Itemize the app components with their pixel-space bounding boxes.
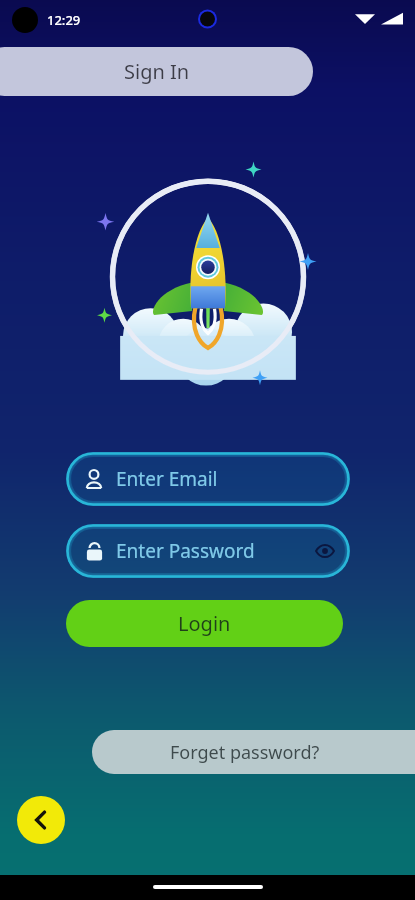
- button[interactable]: Forget password?: [92, 730, 415, 774]
- staticText: Forget password?: [170, 740, 320, 765]
- staticText: Login: [178, 610, 231, 637]
- button[interactable]: Back: [17, 796, 65, 844]
- button[interactable]: Enter Password: [66, 524, 350, 578]
- staticText: 12:29: [47, 11, 81, 29]
- button[interactable]: Enter Email: [66, 452, 350, 506]
- staticText: Sign In: [124, 58, 190, 85]
- staticText: Enter Email: [116, 466, 218, 492]
- staticText: Enter Password: [116, 538, 255, 564]
- button[interactable]: Show password: [312, 538, 338, 564]
- button[interactable]: Login: [66, 600, 343, 647]
- button[interactable]: Sign In: [0, 47, 313, 96]
